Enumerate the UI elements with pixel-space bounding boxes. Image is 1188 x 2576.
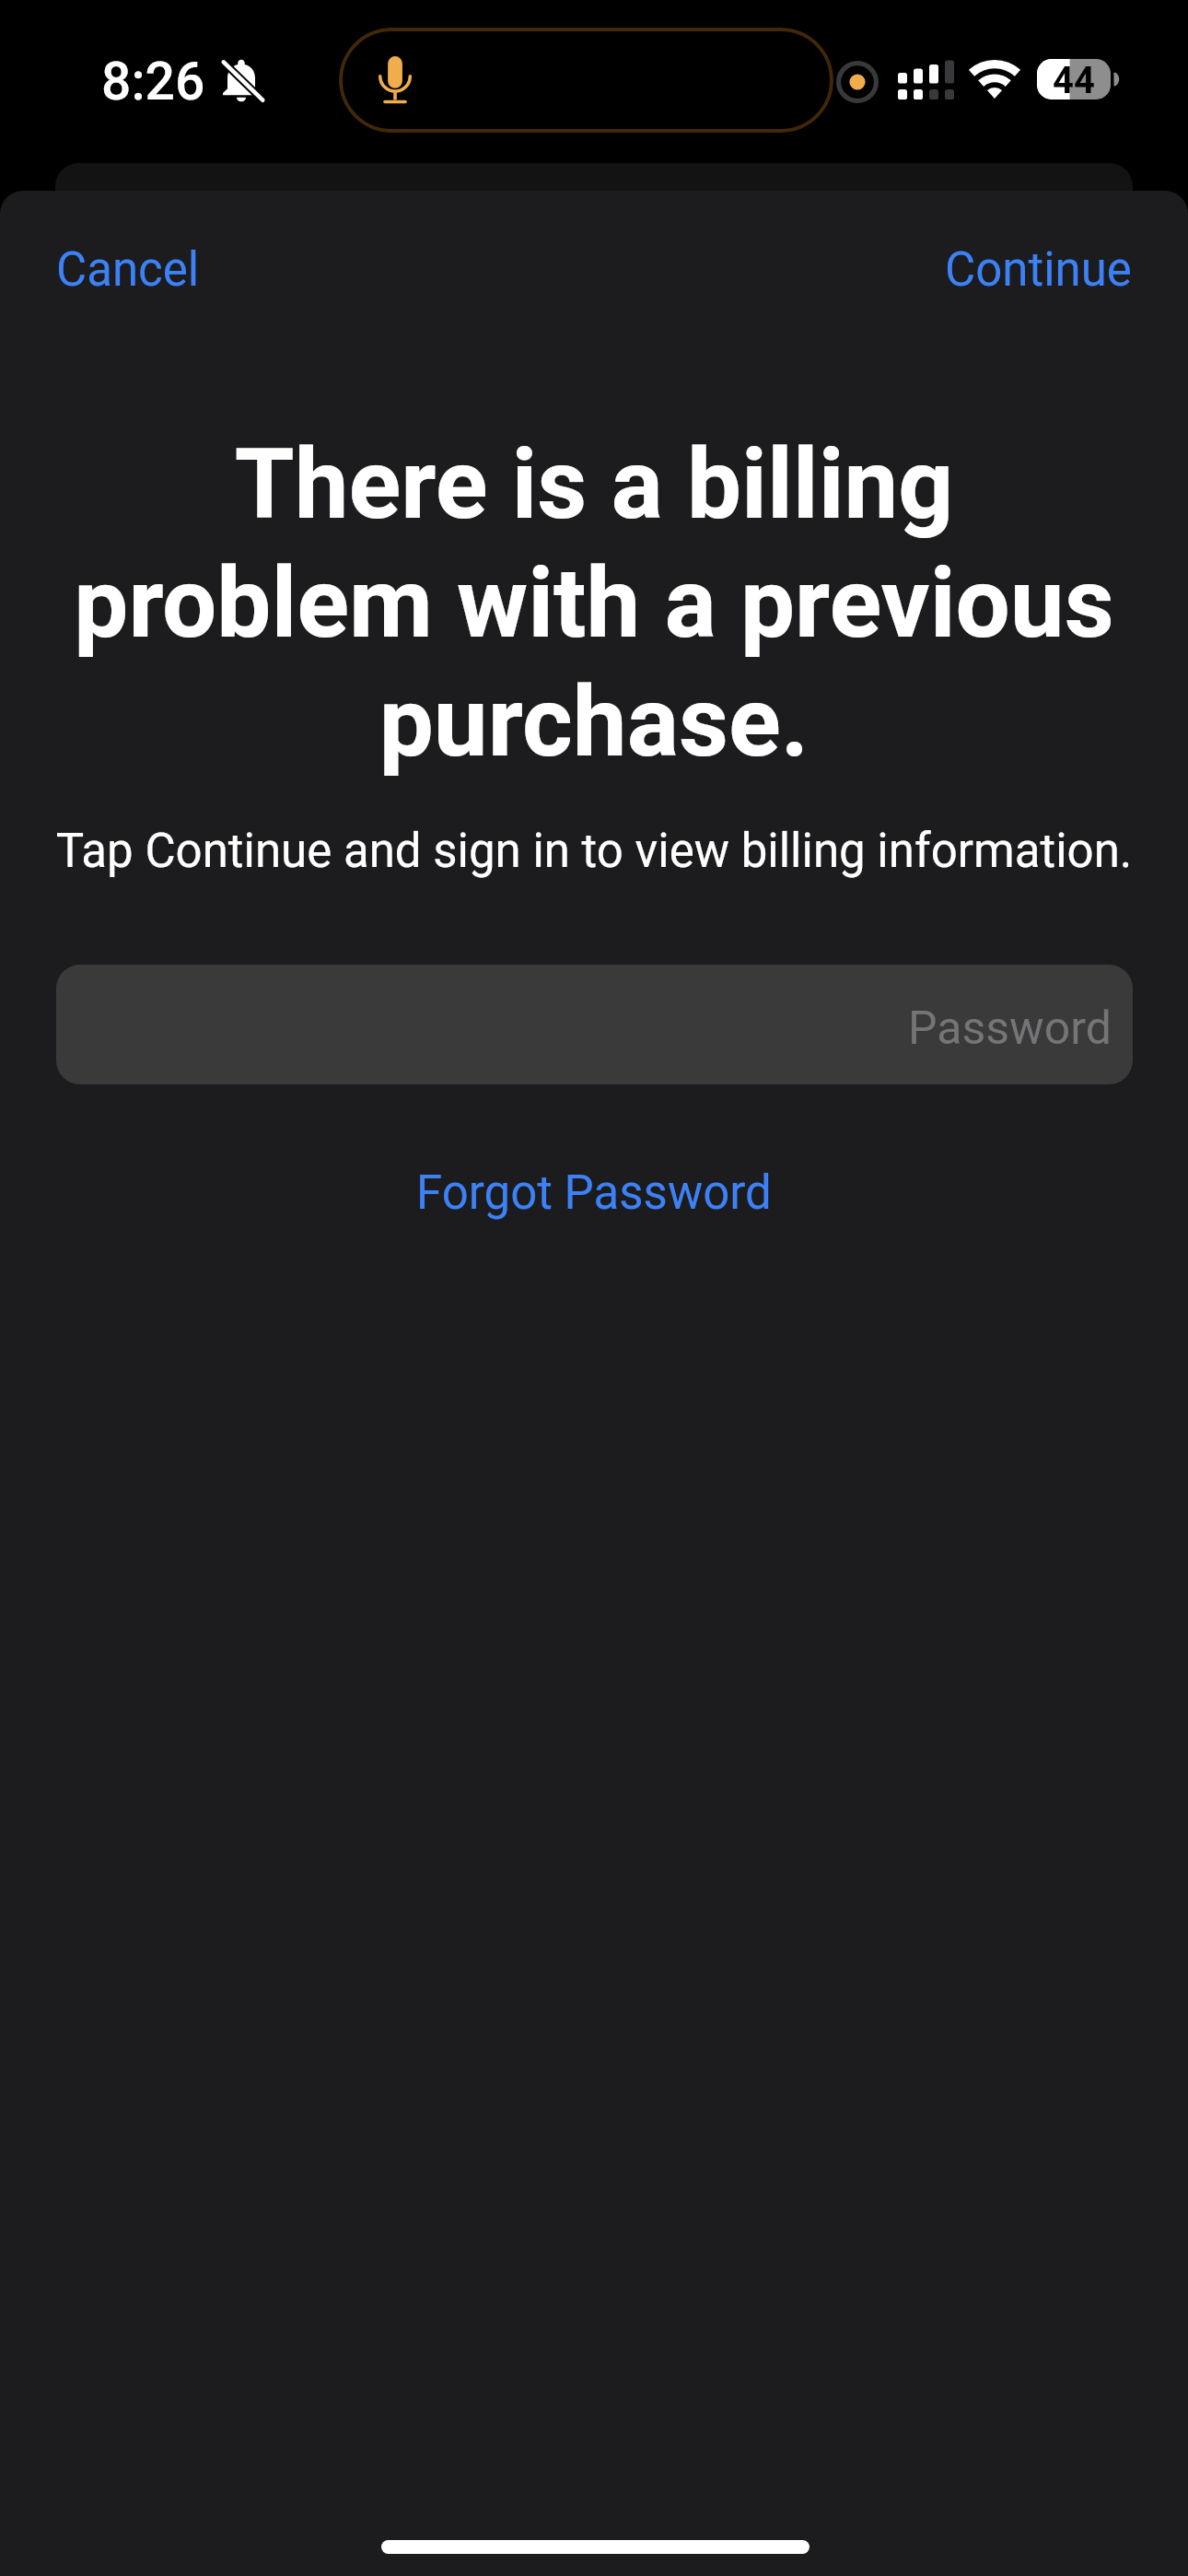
button[interactable]: Forgot Password [389,1149,799,1237]
other: Wi-Fi connected [969,59,1020,99]
other: Silent mode on [214,54,269,106]
staticText: Password [908,1001,1112,1056]
other: Battery 44 percent [1037,59,1120,100]
staticText: 8:26 [101,51,205,112]
staticText: Cancel [56,242,200,298]
staticText: Continue [945,242,1132,298]
button[interactable]: Microphone active [339,28,833,133]
staticText: 44 [1053,59,1095,100]
button[interactable]: Password [56,965,1133,1084]
button[interactable]: Cancel [24,226,232,314]
button[interactable]: Continue [913,226,1164,314]
other: Mobile signal [898,59,954,100]
staticText: There is a billing problem with a previo… [53,428,1135,779]
other: Recording indicator [836,61,879,103]
staticText: Forgot Password [416,1165,772,1221]
staticText: Tap Continue and sign in to view billing… [28,824,1160,879]
